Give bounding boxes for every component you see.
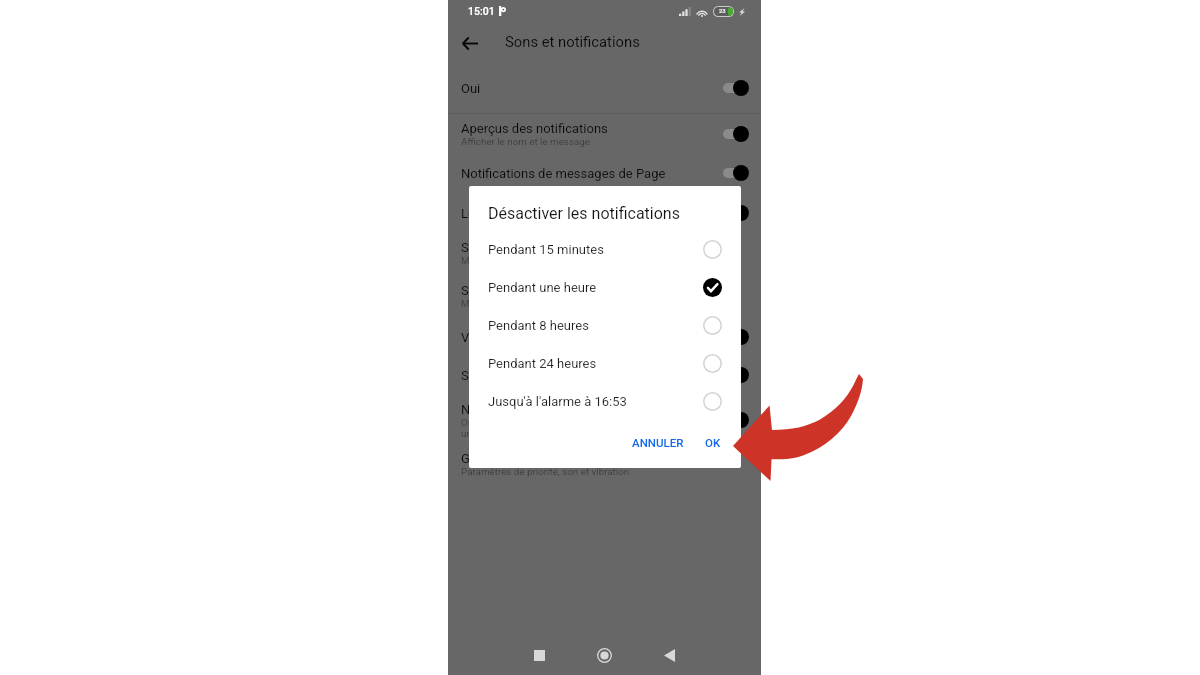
staticText: Paramètres de priorité, son et vibration (461, 466, 630, 477)
button[interactable]: Back (637, 635, 702, 675)
button[interactable]: Gérer les notifications (448, 441, 761, 487)
staticText: Pendant 8 heures (488, 318, 703, 333)
staticText: Notifications sur l'écran de verrouillag… (461, 402, 685, 417)
button[interactable]: Son des notifications (448, 272, 761, 320)
staticText: Oui (461, 81, 481, 96)
button[interactable]: Toggle (723, 165, 749, 181)
staticText: Désactiver les notifications (488, 204, 680, 223)
staticText: Jusqu'à l'alarme à 16:53 (488, 394, 703, 409)
staticText: Ouvrez les paramètres de notification po… (461, 417, 646, 439)
staticText: Son des notifications (461, 283, 583, 298)
button[interactable]: Toggle (723, 329, 749, 345)
button[interactable]: Pendant une heure (469, 268, 741, 306)
staticText: Pendant 24 heures (488, 356, 703, 371)
button[interactable]: ANNULER (624, 430, 692, 455)
button[interactable]: Pendant 24 heures (469, 344, 741, 382)
button[interactable]: Notifications sur l'écran de verrouillag… (448, 391, 761, 449)
staticText: Notifications de messages de Page (461, 166, 666, 181)
button[interactable]: Oui (448, 70, 761, 106)
button[interactable]: Les sons dans l'application (448, 195, 761, 231)
staticText: ANNULER (632, 436, 684, 449)
button[interactable]: Sonnerie des appels (448, 357, 761, 393)
button[interactable]: Aperçus des notifications (448, 110, 761, 158)
staticText: Aperçus des notifications (461, 121, 608, 136)
button[interactable]: Toggle (723, 412, 749, 428)
staticText: Gérer les notifications (461, 451, 588, 466)
staticText: OK (705, 436, 721, 449)
button[interactable]: Jusqu'à l'alarme à 16:53 (469, 382, 741, 420)
button[interactable]: OK (697, 430, 729, 455)
staticText: Message Tone (461, 298, 525, 309)
staticText: Sons et notifications (505, 33, 640, 50)
staticText: 15:01 (468, 5, 495, 17)
staticText: Pendant 15 minutes (488, 242, 703, 257)
button[interactable]: Pendant 15 minutes (469, 230, 741, 268)
button[interactable]: Recents (507, 635, 572, 675)
staticText: 23 (719, 8, 726, 15)
staticText: Message Tone (461, 255, 525, 266)
button[interactable]: Toggle (723, 126, 749, 142)
button[interactable]: Back (453, 26, 487, 60)
button[interactable]: Home (572, 635, 637, 675)
button[interactable]: Notifications de messages de Page (448, 155, 761, 191)
staticText: Sonnerie des appels (461, 368, 578, 383)
button[interactable]: Pendant 8 heures (469, 306, 741, 344)
button[interactable]: Toggle (723, 205, 749, 221)
button[interactable]: Toggle (723, 80, 749, 96)
staticText: Vibreur (461, 330, 503, 345)
button[interactable]: Vibreur (448, 319, 761, 355)
staticText: Pendant une heure (488, 280, 703, 295)
staticText: Afficher le nom et le message (461, 136, 591, 147)
button[interactable]: Toggle (723, 367, 749, 383)
button[interactable]: Son des messages (448, 229, 761, 277)
staticText: Les sons dans l'application (461, 206, 617, 221)
staticText: Son des messages (461, 240, 571, 255)
